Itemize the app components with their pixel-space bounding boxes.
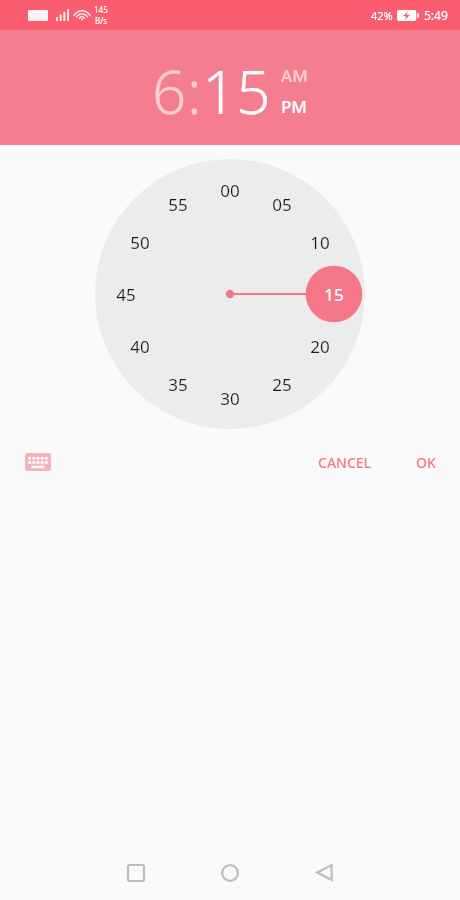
staticText: 25 [272, 373, 292, 396]
button[interactable]: Recent apps [104, 845, 168, 900]
button[interactable]: Home [198, 845, 262, 900]
staticText: 5:49 [424, 7, 448, 23]
staticText: 50 [130, 231, 150, 254]
staticText: 42% [371, 8, 393, 23]
button[interactable]: Switch to text input [18, 442, 58, 482]
button[interactable]: AM [281, 64, 308, 87]
button[interactable]: OK [406, 445, 446, 480]
staticText: OK [416, 453, 436, 472]
staticText: 05 [272, 193, 292, 216]
staticText: 15 [324, 283, 344, 306]
staticText: 35 [168, 373, 188, 396]
button[interactable]: 6 [152, 50, 187, 132]
staticText: 10 [310, 231, 330, 254]
staticText: CANCEL [318, 453, 372, 472]
staticText: 20 [310, 335, 330, 358]
staticText: 00 [220, 179, 240, 202]
button[interactable]: CANCEL [308, 445, 382, 480]
staticText: 30 [220, 387, 240, 410]
staticText: 40 [130, 335, 150, 358]
button[interactable]: Back [292, 845, 356, 900]
staticText: 45 [116, 283, 136, 306]
button[interactable]: PM [281, 95, 307, 118]
button[interactable]: 15 [202, 50, 271, 132]
staticText: 55 [168, 193, 188, 216]
button[interactable]: 00 [95, 159, 365, 429]
staticText: B/s [95, 15, 108, 26]
staticText: 145 [94, 4, 108, 15]
staticText: : [187, 50, 202, 132]
